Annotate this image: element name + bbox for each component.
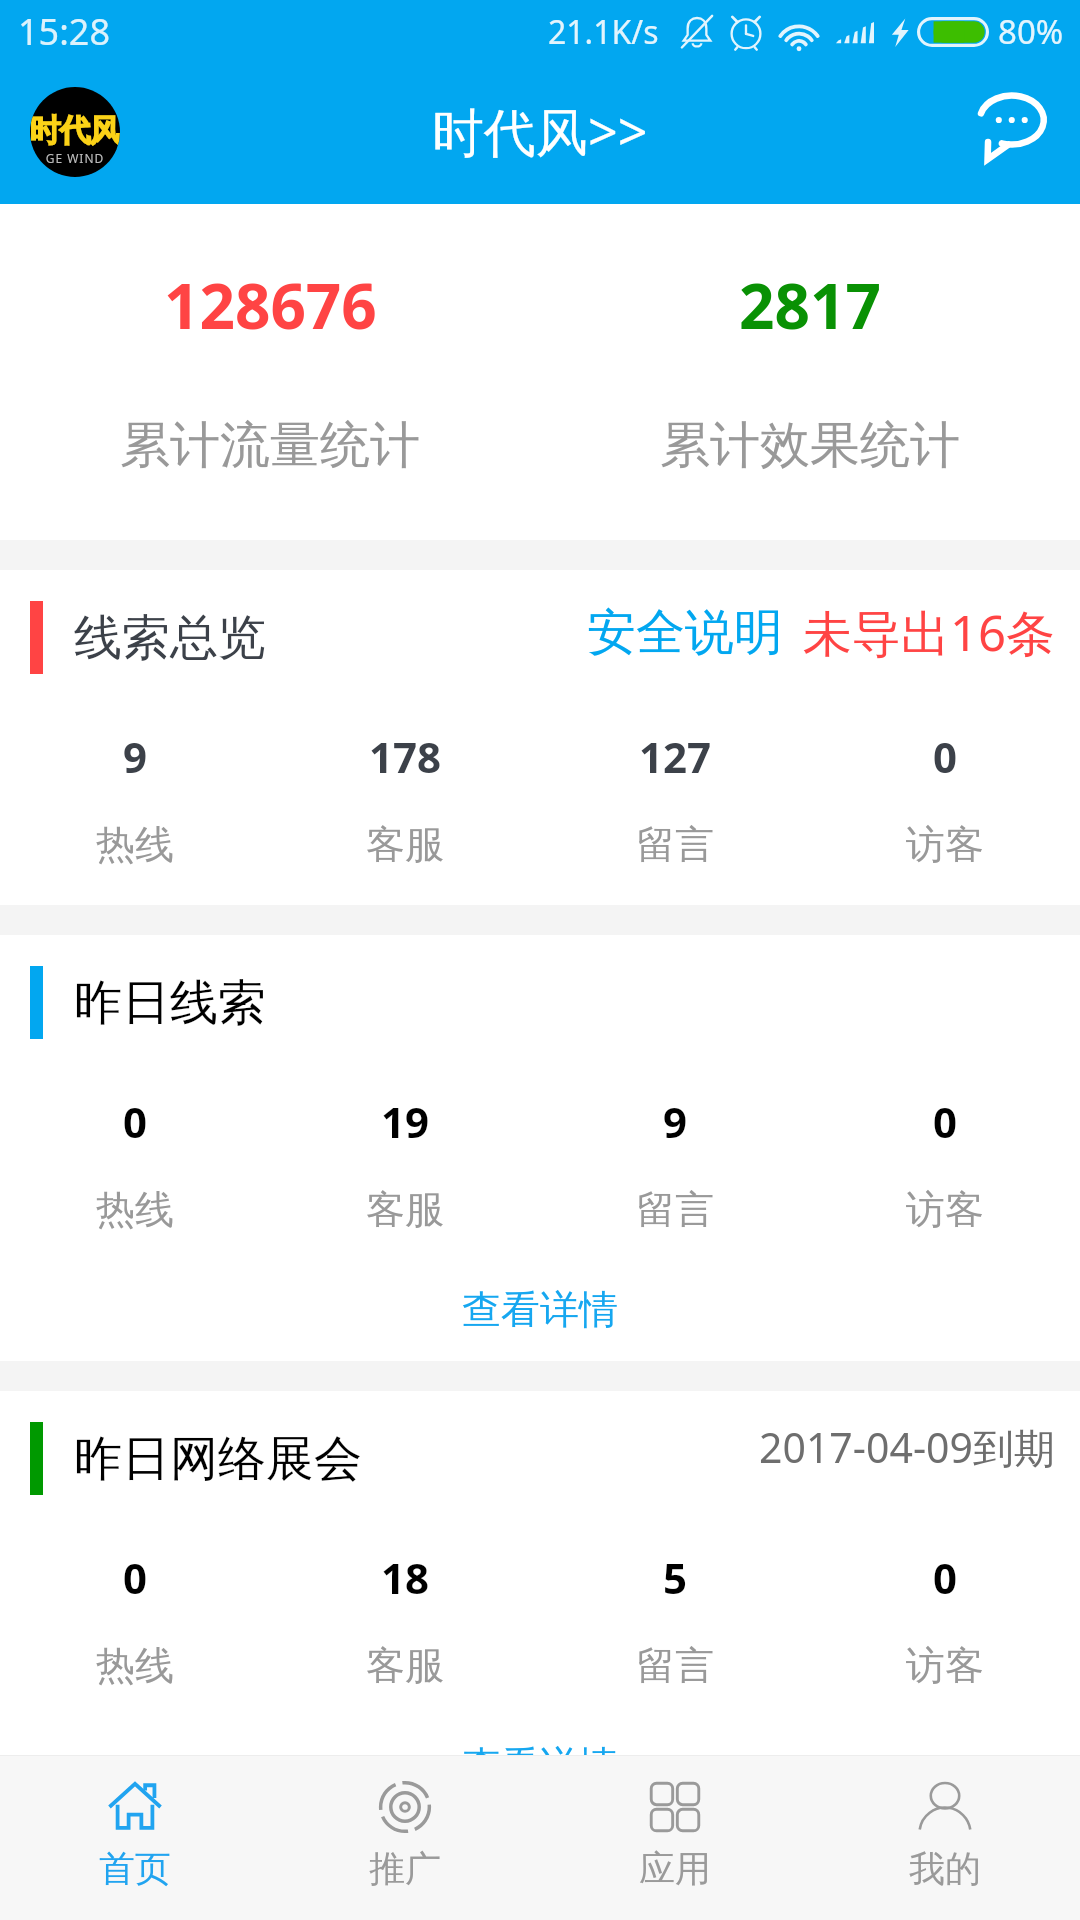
staticText: 昨日网络展会	[74, 1429, 362, 1489]
staticText: 访客	[906, 820, 984, 869]
staticText: 2817	[739, 263, 881, 347]
button[interactable]: 127	[540, 728, 810, 869]
staticText: 累计效果统计	[660, 414, 960, 477]
staticText: 留言	[636, 820, 714, 869]
staticText: 时代风	[30, 111, 120, 150]
staticText: 查看详情	[462, 1741, 618, 1790]
staticText: 0	[933, 1093, 958, 1150]
button[interactable]: Messages	[970, 85, 1066, 181]
button[interactable]: 178	[270, 728, 540, 869]
staticText: 0	[933, 1549, 958, 1606]
button[interactable]: 9	[0, 728, 270, 869]
staticText: 时代风>>	[432, 95, 648, 166]
button[interactable]: 查看详情	[0, 1690, 1080, 1817]
button[interactable]: 0	[0, 1549, 270, 1690]
staticText: 19	[381, 1093, 430, 1150]
button[interactable]: 9	[540, 1093, 810, 1234]
staticText: 留言	[636, 1185, 714, 1234]
staticText: 127	[639, 728, 712, 785]
staticText: 0	[123, 1093, 148, 1150]
staticText: 15:28	[18, 7, 111, 56]
button[interactable]: 2817	[540, 204, 1080, 540]
staticText: 2017-04-09到期	[759, 1419, 1056, 1475]
staticText: 9	[123, 728, 148, 785]
button[interactable]: 128676	[0, 204, 540, 540]
staticText: 热线	[96, 1641, 174, 1690]
staticText: 安全说明	[587, 602, 783, 664]
staticText: 留言	[636, 1641, 714, 1690]
button[interactable]: 0	[0, 1093, 270, 1234]
button[interactable]: 未导出16条	[803, 599, 1056, 666]
staticText: 推广	[369, 1846, 441, 1891]
staticText: 客服	[366, 1641, 444, 1690]
staticText: 热线	[96, 1185, 174, 1234]
button[interactable]: 安全说明	[587, 602, 783, 664]
button[interactable]: 0	[810, 1093, 1080, 1234]
button[interactable]: 0	[810, 728, 1080, 869]
staticText: 0	[933, 728, 958, 785]
staticText: 昨日线索	[74, 973, 266, 1033]
staticText: 线索总览	[74, 608, 266, 668]
staticText: 首页	[99, 1846, 171, 1891]
button[interactable]: 推广	[270, 1756, 540, 1920]
staticText: 访客	[906, 1185, 984, 1234]
staticText: 访客	[906, 1641, 984, 1690]
staticText: 应用	[639, 1846, 711, 1891]
staticText: 热线	[96, 820, 174, 869]
staticText: 21.1K/s	[548, 10, 659, 54]
button[interactable]: Company logo	[30, 87, 120, 177]
staticText: 5	[663, 1549, 688, 1606]
button[interactable]: 查看详情	[0, 1234, 1080, 1361]
staticText: 178	[369, 728, 442, 785]
staticText: 9	[663, 1093, 688, 1150]
button[interactable]: 19	[270, 1093, 540, 1234]
staticText: 80%	[998, 9, 1064, 54]
button[interactable]: 0	[810, 1549, 1080, 1690]
staticText: 128676	[164, 263, 377, 347]
button[interactable]: 5	[540, 1549, 810, 1690]
button[interactable]: 我的	[810, 1756, 1080, 1920]
button[interactable]: 应用	[540, 1756, 810, 1920]
staticText: 累计流量统计	[120, 414, 420, 477]
button[interactable]: 18	[270, 1549, 540, 1690]
staticText: 0	[123, 1549, 148, 1606]
staticText: 客服	[366, 1185, 444, 1234]
staticText: 未导出16条	[803, 599, 1056, 666]
staticText: 我的	[909, 1846, 981, 1891]
staticText: 18	[381, 1549, 430, 1606]
staticText: 查看详情	[462, 1285, 618, 1334]
staticText: GE WIND	[30, 150, 120, 166]
button[interactable]: 首页	[0, 1756, 270, 1920]
staticText: 客服	[366, 820, 444, 869]
